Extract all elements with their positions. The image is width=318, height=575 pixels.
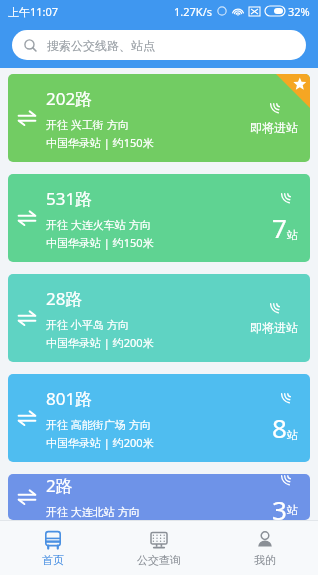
staticText: 站 <box>287 503 298 517</box>
button[interactable]: 我的 <box>212 521 318 575</box>
staticText: 开往 大连火车站 方向 <box>46 217 151 232</box>
button[interactable]: 531路 <box>8 174 310 262</box>
staticText: 3 <box>272 492 287 520</box>
staticText: 531路 <box>46 187 93 210</box>
button[interactable]: 202路 <box>8 74 310 162</box>
staticText: 中国华录站 | 约200米 <box>46 335 154 350</box>
staticText: 1.27K/s <box>174 4 212 19</box>
staticText: 站 <box>287 228 298 242</box>
staticText: 中国华录站 | 约150米 <box>46 235 154 250</box>
button[interactable]: 2路 <box>8 474 310 520</box>
button[interactable]: 28路 <box>8 274 310 362</box>
staticText: 开往 大连北站 方向 <box>46 504 140 519</box>
staticText: 8 <box>272 410 287 445</box>
staticText: 上午11:07 <box>8 4 59 19</box>
button[interactable]: 首页 <box>0 521 106 575</box>
staticText: 7 <box>272 210 287 245</box>
staticText: 开往 高能街广场 方向 <box>46 417 151 432</box>
staticText: 搜索公交线路、站点 <box>47 38 155 53</box>
staticText: 我的 <box>254 553 276 567</box>
staticText: 首页 <box>42 553 64 567</box>
staticText: 202路 <box>46 87 93 110</box>
staticText: 开往 小平岛 方向 <box>46 317 129 332</box>
staticText: 开往 兴工街 方向 <box>46 117 129 132</box>
staticText: 即将进站 <box>250 120 298 135</box>
staticText: 28路 <box>46 287 83 310</box>
staticText: 即将进站 <box>250 320 298 335</box>
button[interactable]: 公交查询 <box>106 521 212 575</box>
button[interactable]: 801路 <box>8 374 310 462</box>
staticText: 站 <box>287 428 298 442</box>
staticText: 32% <box>288 4 310 19</box>
staticText: 801路 <box>46 387 93 410</box>
staticText: 中国华录站 | 约200米 <box>46 435 154 450</box>
staticText: 2路 <box>46 474 73 497</box>
staticText: 公交查询 <box>137 553 181 567</box>
button[interactable]: 搜索公交线路、站点 <box>12 30 306 60</box>
staticText: 中国华录站 | 约150米 <box>46 135 154 150</box>
